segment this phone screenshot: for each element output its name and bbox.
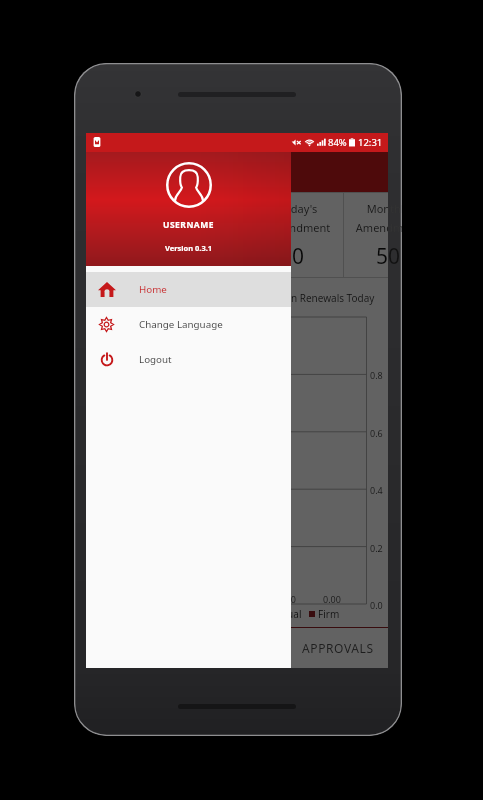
- staticText: APPROVALS: [302, 640, 374, 656]
- button[interactable]: Home: [86, 272, 291, 307]
- staticText: 0.8: [370, 369, 383, 381]
- staticText: Logout: [139, 353, 172, 366]
- staticText: Monthly Amendment: [343, 201, 402, 235]
- staticText: 12: [74, 242, 163, 271]
- staticText: USERNAME: [163, 219, 215, 231]
- staticText: Individual: [255, 607, 302, 621]
- button[interactable]: Yearly Amendment: [163, 192, 253, 278]
- staticText: 0.00: [278, 593, 296, 605]
- button[interactable]: Today's Amendment: [253, 192, 343, 278]
- button[interactable]: Monthly Amendment: [343, 192, 402, 278]
- staticText: 0.0: [370, 599, 383, 611]
- staticText: 0.4: [370, 484, 383, 496]
- button[interactable]: Weekly Amendment: [74, 192, 163, 278]
- staticText: 84%: [328, 136, 347, 149]
- staticText: Yearly Amendment: [163, 201, 253, 235]
- staticText: 0.2: [370, 542, 383, 554]
- staticText: Firm: [318, 607, 340, 621]
- button[interactable]: Change Language: [86, 307, 291, 342]
- staticText: Loan Renewals Today: [274, 291, 375, 305]
- staticText: Weekly Amendment: [74, 201, 163, 235]
- staticText: Today's Amendment: [253, 201, 343, 235]
- staticText: Version 0.3.1: [165, 243, 213, 253]
- staticText: Home: [139, 283, 167, 296]
- staticText: 0: [253, 242, 343, 271]
- button[interactable]: Logout: [86, 342, 291, 377]
- staticText: 0.00: [323, 593, 341, 605]
- staticText: 90: [163, 242, 253, 271]
- staticText: Change Language: [139, 318, 223, 331]
- staticText: 12:31: [358, 136, 383, 149]
- staticText: 0.6: [370, 427, 383, 439]
- staticText: 50: [343, 242, 402, 271]
- button[interactable]: APPROVALS: [287, 628, 388, 668]
